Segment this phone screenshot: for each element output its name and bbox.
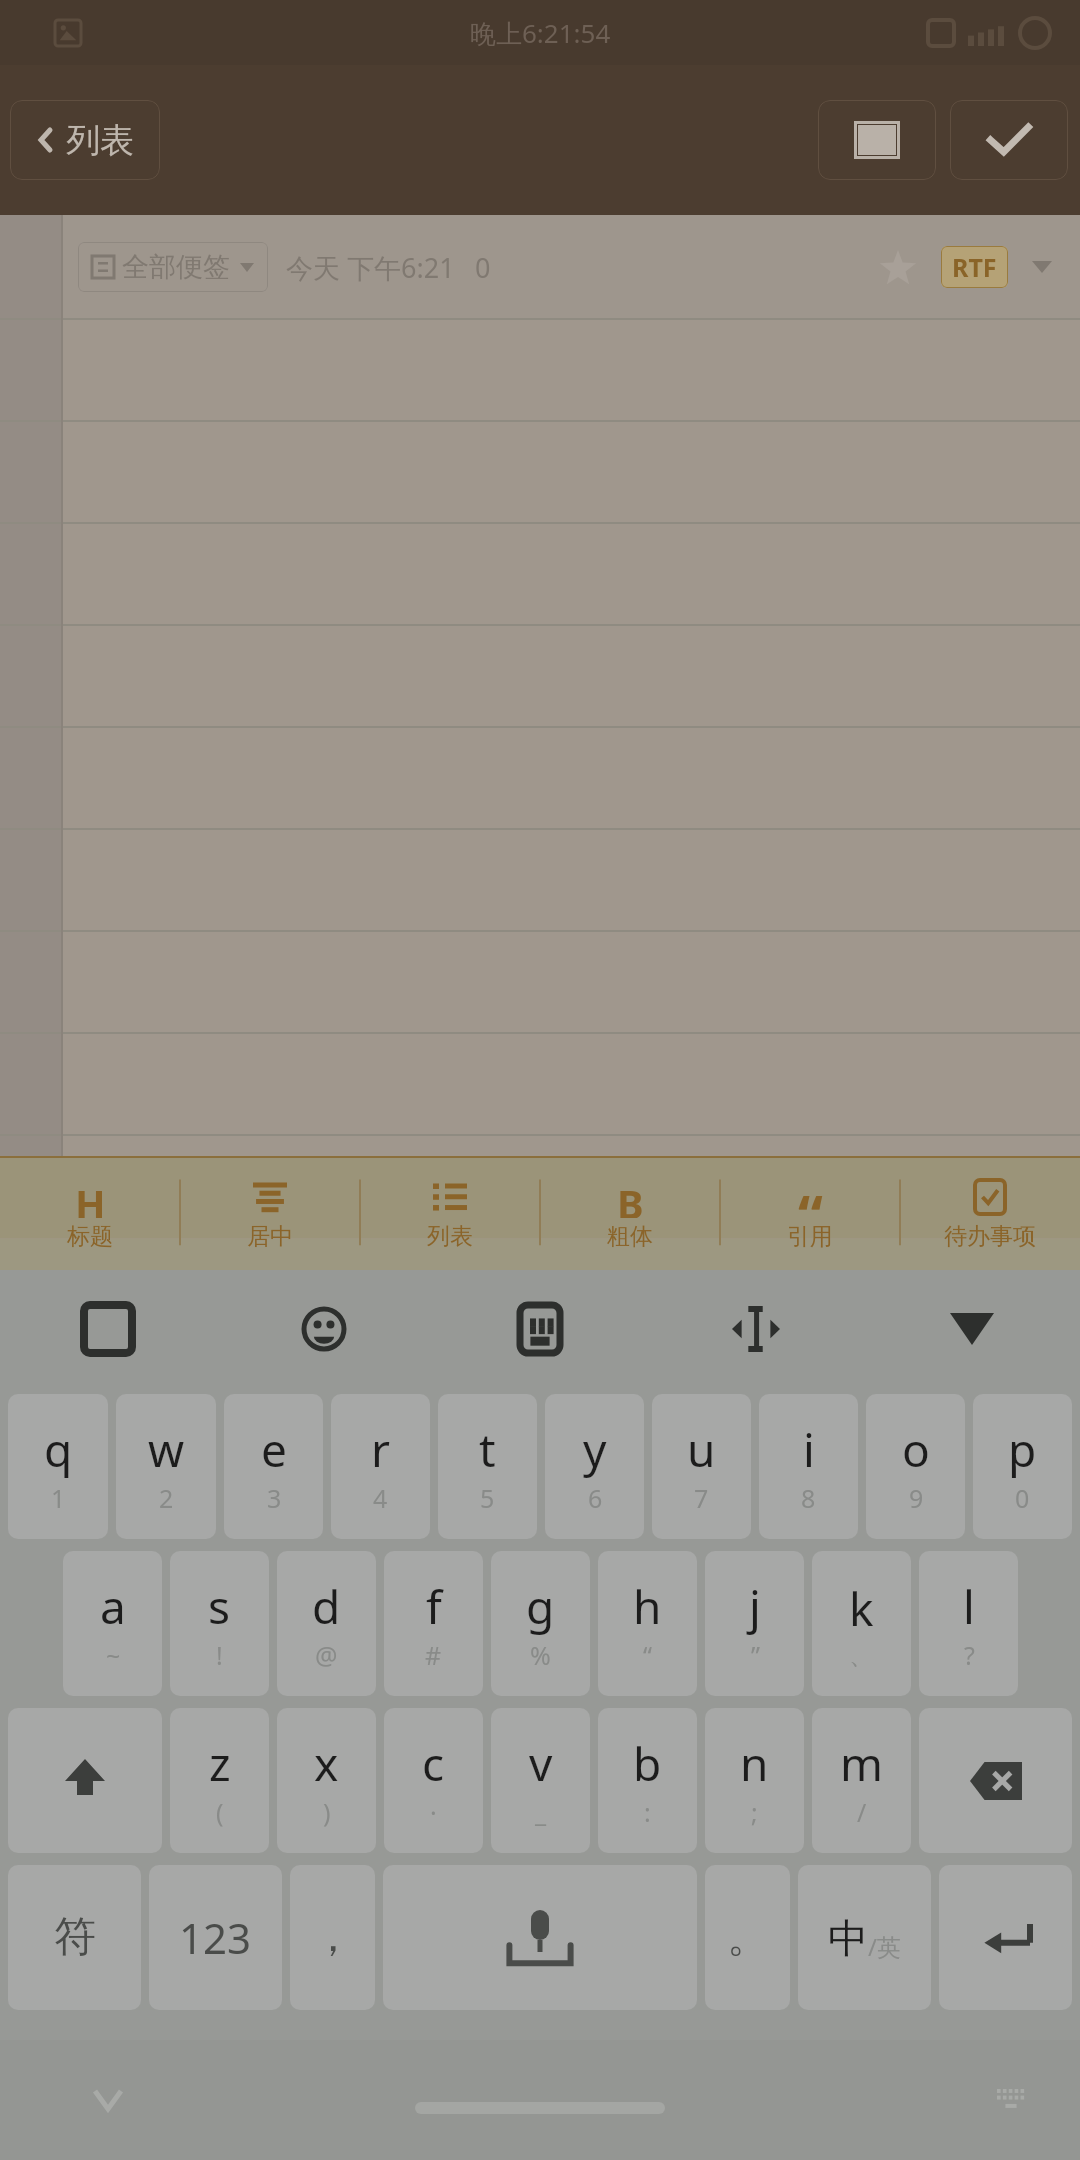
button[interactable]: v [491,1708,590,1853]
button[interactable]: o [866,1394,965,1539]
button[interactable]: Sogou [0,1270,216,1388]
staticText: t [479,1418,496,1481]
button[interactable]: H [0,1157,180,1270]
staticText: 粗体 [607,1222,653,1251]
button[interactable]: Space / voice input [383,1865,697,2010]
staticText: H [75,1176,106,1218]
button[interactable]: c [384,1708,483,1853]
button[interactable]: m [812,1708,911,1853]
button[interactable]: 待办事项 [900,1157,1080,1270]
button[interactable]: 列表 [360,1157,540,1270]
staticText: B [617,1176,644,1218]
button[interactable]: b [598,1708,697,1853]
staticText: % [530,1638,551,1672]
button[interactable]: l [919,1551,1018,1696]
button[interactable]: e [224,1394,323,1539]
button[interactable]: z [170,1708,269,1853]
staticText: 符 [54,1911,96,1964]
staticText: n [740,1732,769,1795]
button[interactable]: t [438,1394,537,1539]
button[interactable]: r [331,1394,430,1539]
button[interactable]: f [384,1551,483,1696]
button[interactable]: Hide keyboard [864,1270,1080,1388]
staticText: ? [964,1638,975,1672]
staticText: ~ [106,1638,121,1672]
button[interactable]: RTF [941,246,1008,288]
button[interactable]: 列表 [10,100,160,180]
staticText: z [209,1732,231,1795]
staticText: ; [751,1795,758,1829]
staticText: “ [798,1176,823,1218]
staticText: b [633,1732,662,1795]
staticText: f [426,1575,442,1638]
staticText: i [803,1418,815,1481]
button[interactable]: Keyboard layout [432,1270,648,1388]
staticText: 晚上6:21:54 [470,15,611,51]
staticText: g [526,1575,555,1638]
staticText: _ [535,1795,547,1829]
staticText: 。 [727,1911,769,1964]
button[interactable]: u [652,1394,751,1539]
button[interactable]: j [705,1551,804,1696]
staticText: 居中 [247,1222,293,1251]
staticText: 2 [159,1481,174,1515]
staticText: o [902,1418,930,1481]
button[interactable]: More [1024,253,1060,281]
staticText: u [687,1418,716,1481]
staticText: r [371,1418,390,1481]
button[interactable]: 。 [705,1865,790,2010]
button[interactable]: Shift [8,1708,162,1853]
button[interactable]: Favourite [873,242,923,292]
staticText: @ [315,1638,338,1672]
button[interactable]: 符 [8,1865,141,2010]
button[interactable]: w [116,1394,216,1539]
button[interactable]: y [545,1394,644,1539]
button[interactable]: k [812,1551,911,1696]
button[interactable]: 全部便签 [78,242,268,292]
button[interactable]: d [277,1551,376,1696]
button[interactable]: p [973,1394,1072,1539]
staticText: 中 [828,1913,868,1963]
staticText: “ [643,1638,652,1672]
staticText: ” [751,1638,760,1672]
button[interactable]: Cursor [648,1270,864,1388]
staticText: ! [216,1638,223,1672]
staticText: : [644,1795,651,1829]
button[interactable]: Backspace [919,1708,1072,1853]
staticText: 待办事项 [944,1222,1036,1251]
button[interactable]: Hide keyboard [987,2079,1035,2121]
button[interactable]: 居中 [180,1157,360,1270]
button[interactable]: s [170,1551,269,1696]
button[interactable]: q [8,1394,108,1539]
button[interactable]: h [598,1551,697,1696]
button[interactable]: Enter [939,1865,1072,2010]
staticText: q [44,1418,73,1481]
button[interactable]: 中 [798,1865,931,2010]
button[interactable]: B [540,1157,720,1270]
button[interactable]: g [491,1551,590,1696]
button[interactable]: i [759,1394,858,1539]
staticText: RTF [952,250,997,284]
button[interactable]: a [63,1551,162,1696]
staticText: 1 [51,1481,66,1515]
button[interactable]: Insert image [818,100,936,180]
staticText: 6 [588,1481,603,1515]
button[interactable]: 123 [149,1865,282,2010]
staticText: l [963,1575,975,1638]
button[interactable]: n [705,1708,804,1853]
staticText: 8 [801,1481,816,1515]
staticText: 0 [475,249,491,286]
button[interactable]: Emoji [216,1270,432,1388]
staticText: / [857,1795,867,1829]
staticText: a [100,1575,126,1638]
staticText: x [314,1732,339,1795]
staticText: p [1008,1418,1037,1481]
button[interactable]: ， [290,1865,375,2010]
button[interactable]: “ [720,1157,900,1270]
button[interactable]: Back [85,2081,131,2119]
button[interactable]: x [277,1708,376,1853]
staticText: 123 [179,1909,252,1966]
button[interactable]: Done [950,100,1068,180]
